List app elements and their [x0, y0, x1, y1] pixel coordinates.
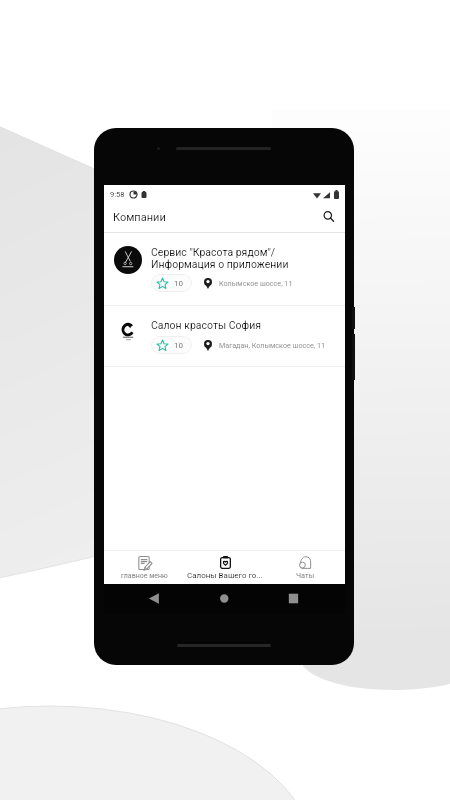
- button[interactable]: Сервис "Красота рядом"/ Информация о при…: [104, 233, 345, 306]
- staticText: 10: [174, 279, 183, 288]
- staticText: Колымское шоссе, 11: [219, 279, 293, 287]
- button[interactable]: 10: [151, 274, 192, 292]
- staticText: 9:58: [110, 190, 125, 199]
- staticText: Чаты: [296, 571, 315, 580]
- button[interactable]: Search: [318, 206, 340, 228]
- staticText: Салон красоты София: [151, 319, 261, 331]
- button[interactable]: Чаты: [265, 551, 345, 584]
- button[interactable]: 10: [151, 336, 192, 354]
- staticText: Сервис "Красота рядом"/ Информация о при…: [151, 246, 289, 270]
- staticText: 10: [174, 341, 183, 350]
- staticText: Салоны Вашего го...: [187, 571, 263, 580]
- button[interactable]: Салоны Вашего го...: [185, 551, 265, 584]
- staticText: главное меню: [121, 572, 168, 580]
- button[interactable]: Салон красоты София: [104, 306, 345, 367]
- button[interactable]: главное меню: [104, 551, 185, 584]
- staticText: Компании: [113, 211, 166, 224]
- staticText: Магадан, Колымское шоссе, 11: [219, 341, 326, 349]
